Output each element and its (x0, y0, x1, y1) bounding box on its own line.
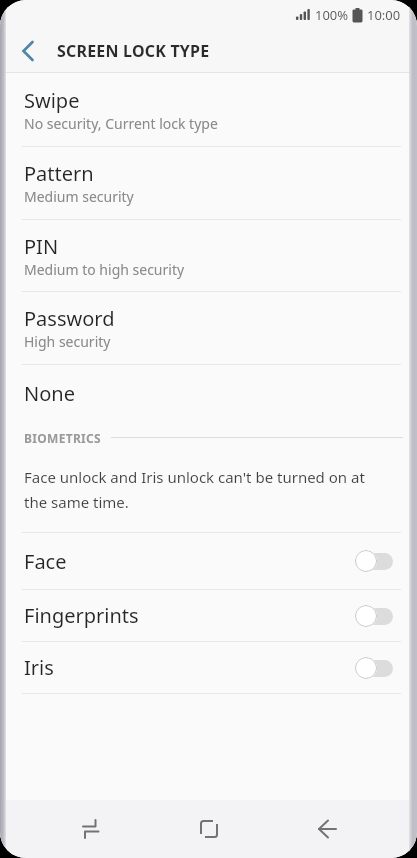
staticText: BIOMETRICS (24, 430, 101, 446)
staticText: Face unlock and Iris unlock can't be tur… (24, 467, 365, 512)
staticText: Medium to high security (24, 260, 185, 279)
button[interactable] (10, 33, 46, 69)
button[interactable]: Password (0, 292, 417, 364)
button[interactable] (180, 800, 238, 858)
staticText: Pattern (24, 160, 94, 187)
staticText: 100% (315, 6, 349, 24)
staticText: Face (24, 548, 67, 575)
button[interactable]: Pattern (0, 147, 417, 219)
button[interactable] (298, 800, 356, 858)
staticText: High security (24, 332, 111, 351)
button[interactable] (62, 800, 120, 858)
staticText: 10:00 (367, 6, 401, 24)
button[interactable]: Iris (0, 642, 417, 693)
staticText: PIN (24, 233, 59, 260)
button[interactable]: PIN (0, 220, 417, 291)
button[interactable]: Fingerprints (0, 590, 417, 641)
button[interactable]: Face (0, 533, 417, 589)
button[interactable]: None (0, 365, 417, 421)
staticText: Fingerprints (24, 602, 139, 629)
staticText: Medium security (24, 187, 134, 206)
staticText: Swipe (24, 87, 80, 114)
staticText: None (24, 380, 75, 407)
button[interactable]: Swipe (0, 73, 417, 146)
staticText: Password (24, 305, 115, 332)
staticText: SCREEN LOCK TYPE (57, 40, 210, 62)
staticText: No security, Current lock type (24, 114, 218, 133)
staticText: Iris (24, 654, 54, 681)
